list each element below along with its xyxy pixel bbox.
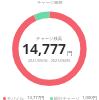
button[interactable]: モバイル: [3, 95, 45, 100]
staticText: 13,777円: [27, 95, 45, 100]
staticText: 2021/05/06 - 2021/06/05: [28, 58, 71, 63]
staticText: モバイル: [7, 96, 25, 100]
staticText: チャージ履歴: [37, 0, 63, 4]
staticText: 14,777: [22, 39, 67, 58]
staticText: チャージ残高: [36, 36, 63, 41]
staticText: 1,000円: [82, 95, 97, 100]
button[interactable]: 銀行チャージ: [50, 95, 97, 100]
staticText: 円: [67, 50, 73, 57]
staticText: 銀行チャージ: [54, 96, 80, 100]
